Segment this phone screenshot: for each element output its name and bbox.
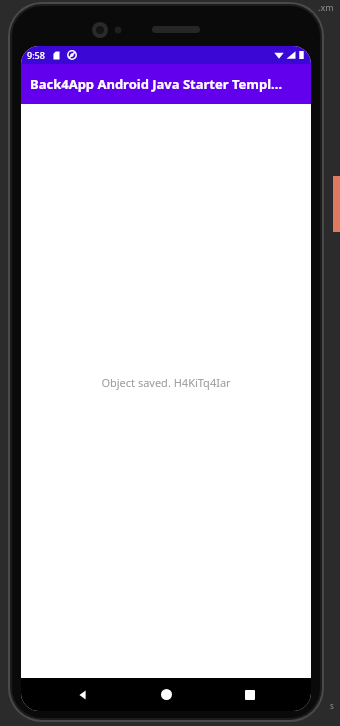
button[interactable]: Recent apps — [228, 678, 272, 711]
button[interactable]: Back — [61, 678, 105, 711]
staticText: Object saved. H4KiTq4Iar — [101, 375, 231, 390]
button[interactable]: Home — [144, 678, 188, 711]
staticText: 9:58 — [27, 49, 45, 61]
staticText: Back4App Android Java Starter Templ… — [30, 75, 283, 93]
staticText: s — [330, 700, 334, 711]
staticText: .xm — [318, 1, 334, 13]
button[interactable]: Back4App Android Java Starter Templ… — [21, 64, 311, 104]
